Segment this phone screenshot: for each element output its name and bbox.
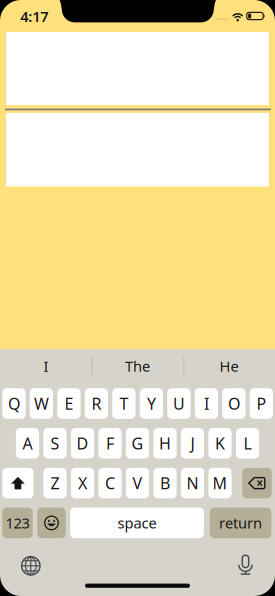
button[interactable]: O (222, 388, 245, 419)
button[interactable]: The (92, 353, 182, 379)
staticText: H (159, 433, 171, 454)
button[interactable]: A (16, 428, 39, 459)
button[interactable]: H (153, 428, 177, 459)
staticText: D (76, 433, 88, 454)
button[interactable]: T (112, 388, 135, 419)
staticText: C (105, 472, 115, 494)
staticText: V (132, 472, 142, 494)
staticText: space (117, 513, 156, 533)
staticText: I (43, 356, 48, 376)
button[interactable]: S (43, 428, 67, 459)
button[interactable]: Y (140, 388, 163, 419)
staticText: K (215, 433, 225, 454)
button[interactable]: Dictation (228, 549, 262, 581)
staticText: I (204, 393, 209, 414)
staticText: 4:17 (20, 6, 48, 26)
button[interactable]: Next keyboard (14, 550, 48, 582)
button[interactable]: B (153, 468, 177, 498)
staticText: T (119, 393, 128, 414)
staticText: E (64, 393, 73, 414)
button[interactable]: Emoji (37, 508, 66, 538)
button[interactable]: I (1, 353, 91, 379)
button[interactable]: 123 (2, 508, 33, 538)
button[interactable]: P (250, 388, 273, 419)
button[interactable]: V (126, 468, 149, 498)
button[interactable]: Q (2, 388, 25, 419)
staticText: R (91, 393, 101, 414)
staticText: return (219, 513, 262, 533)
staticText: 123 (5, 513, 29, 533)
button[interactable]: K (208, 428, 232, 459)
staticText: S (50, 433, 59, 454)
button[interactable]: Delete (242, 468, 272, 498)
button[interactable]: J (181, 428, 204, 459)
button[interactable]: Shift (2, 468, 33, 498)
staticText: O (228, 393, 240, 414)
staticText: The (125, 356, 150, 376)
staticText: He (219, 356, 238, 376)
button[interactable]: G (126, 428, 149, 459)
button[interactable]: Z (43, 468, 67, 498)
staticText: X (78, 472, 87, 494)
button[interactable]: M (208, 468, 232, 498)
staticText: G (131, 433, 143, 454)
button[interactable]: F (98, 428, 122, 459)
button[interactable]: D (71, 428, 94, 459)
staticText: P (256, 393, 266, 414)
staticText: Z (50, 472, 59, 494)
button[interactable]: R (85, 388, 108, 419)
staticText: W (34, 393, 49, 414)
staticText: M (212, 472, 227, 494)
staticText: F (106, 433, 114, 454)
button[interactable]: X (71, 468, 94, 498)
staticText: B (160, 472, 170, 494)
button[interactable]: W (30, 388, 53, 419)
staticText: U (173, 393, 185, 414)
staticText: A (22, 433, 32, 454)
staticText: Q (8, 393, 20, 414)
staticText: N (186, 472, 198, 494)
button[interactable]: L (236, 428, 259, 459)
staticText: L (243, 433, 251, 454)
button[interactable]: C (98, 468, 122, 498)
button[interactable]: return (210, 508, 271, 538)
button[interactable]: I (195, 388, 218, 419)
button[interactable]: U (167, 388, 190, 419)
button[interactable]: E (57, 388, 80, 419)
button[interactable]: N (181, 468, 204, 498)
staticText: Y (147, 393, 156, 414)
button[interactable]: He (184, 353, 274, 379)
staticText: J (190, 433, 194, 454)
button[interactable]: space (70, 508, 204, 538)
